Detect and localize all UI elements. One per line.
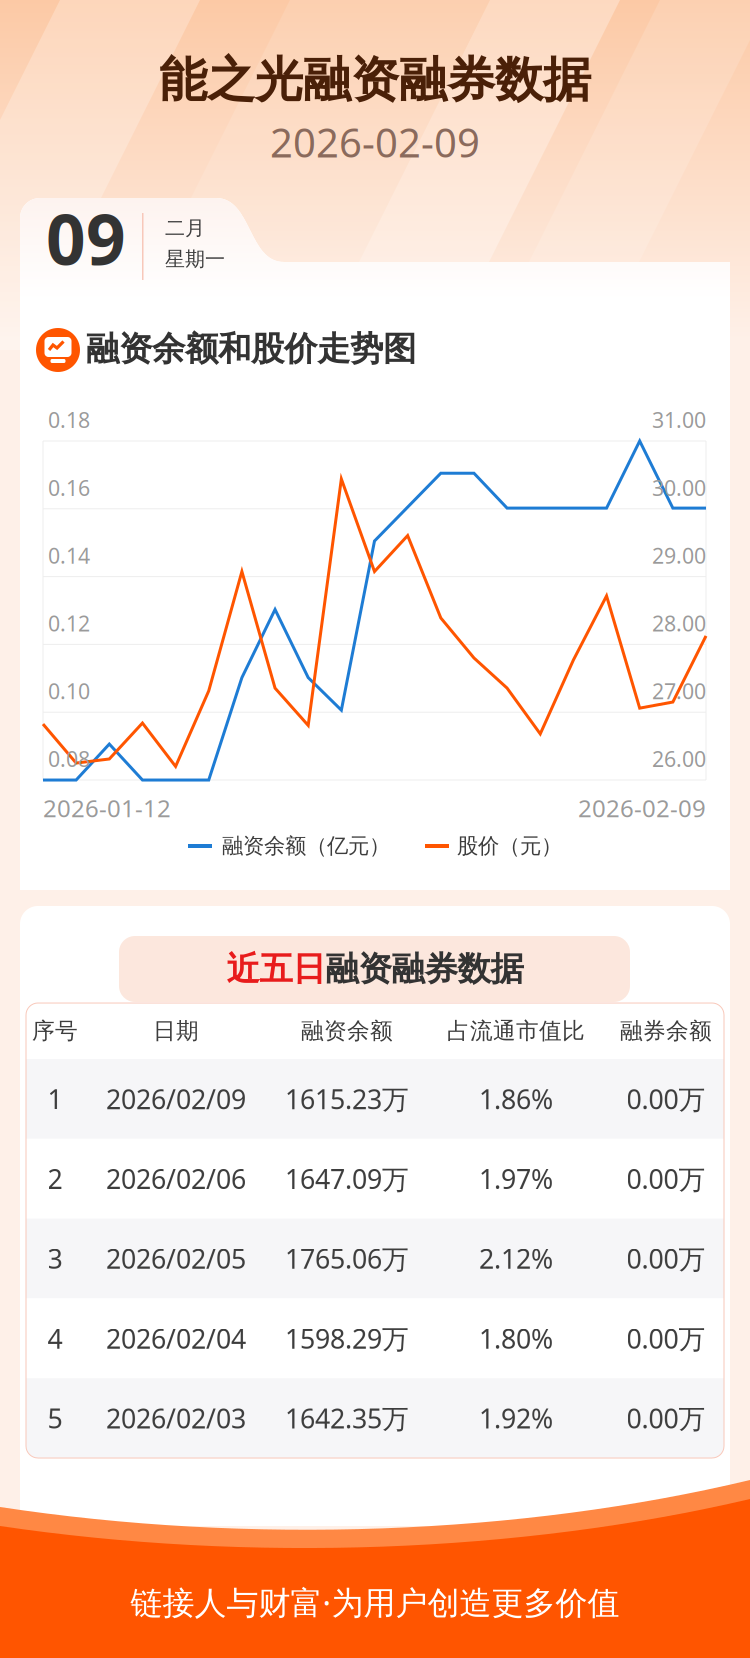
staticText: 09 (46, 192, 126, 284)
staticText: 2026-02-09 (578, 792, 706, 824)
staticText: 29.00 (652, 541, 706, 570)
staticText: 2 (47, 1161, 62, 1196)
staticText: 1.92% (479, 1400, 553, 1436)
staticText: 星期一 (165, 247, 225, 271)
staticText: 27.00 (652, 677, 706, 705)
staticText: 2026/02/04 (106, 1321, 246, 1356)
staticText: 2026/02/03 (106, 1400, 246, 1436)
staticText: 1598.29万 (285, 1321, 409, 1356)
staticText: 30.00 (652, 473, 706, 502)
staticText: 1765.06万 (285, 1241, 409, 1276)
staticText: 能之光融资融券数据 (159, 50, 591, 109)
staticText: 序号 (32, 1017, 78, 1045)
staticText: 1.80% (479, 1321, 553, 1356)
staticText: 5 (47, 1400, 62, 1436)
staticText: 0.14 (48, 541, 90, 570)
staticText: 4 (47, 1321, 62, 1356)
staticText: 股价（元） (457, 833, 562, 859)
staticText: 0.00万 (626, 1081, 705, 1117)
staticText: 0.00万 (626, 1241, 705, 1276)
staticText: 占流通市值比 (447, 1017, 585, 1045)
staticText: 0.00万 (626, 1321, 705, 1356)
staticText: 31.00 (652, 406, 706, 434)
staticText: 1.97% (479, 1161, 553, 1196)
staticText: 28.00 (652, 609, 706, 637)
staticText: 2026-01-12 (43, 792, 171, 824)
staticText: 3 (47, 1241, 62, 1276)
staticText: 0.10 (48, 677, 90, 705)
staticText: 近五日 (226, 948, 325, 989)
staticText: 1615.23万 (285, 1081, 409, 1117)
staticText: 1 (47, 1081, 62, 1117)
staticText: 0.12 (48, 609, 90, 637)
staticText: 融资余额（亿元） (222, 833, 390, 859)
staticText: 1.86% (479, 1081, 553, 1117)
staticText: 0.18 (48, 406, 90, 434)
staticText: 1647.09万 (285, 1161, 409, 1196)
staticText: 二月 (165, 216, 205, 240)
staticText: 0.00万 (626, 1161, 705, 1196)
staticText: 融资余额 (301, 1017, 393, 1045)
staticText: 2026/02/06 (106, 1161, 246, 1196)
staticText: 0.08 (48, 745, 90, 773)
staticText: 融资融券数据 (325, 948, 523, 989)
staticText: 2026-02-09 (270, 115, 480, 168)
staticText: 2026/02/05 (106, 1241, 246, 1276)
staticText: 链接人与财富·为用户创造更多价值 (130, 1581, 619, 1623)
staticText: 0.00万 (626, 1400, 705, 1436)
staticText: 融券余额 (620, 1017, 712, 1045)
staticText: 0.16 (48, 473, 90, 502)
staticText: 融资余额和股价走势图 (86, 328, 416, 369)
staticText: 1642.35万 (285, 1400, 409, 1436)
staticText: 26.00 (652, 745, 706, 773)
staticText: 日期 (153, 1017, 199, 1045)
staticText: 2.12% (479, 1241, 553, 1276)
staticText: 2026/02/09 (106, 1081, 246, 1117)
